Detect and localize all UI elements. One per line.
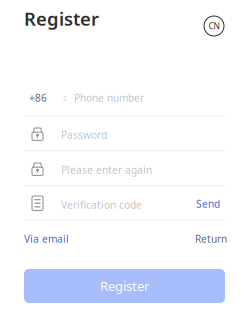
- staticText: +86: [29, 91, 47, 105]
- staticText: Register: [24, 6, 99, 31]
- button[interactable]: Send: [196, 197, 220, 211]
- staticText: Return: [195, 232, 227, 246]
- staticText: Send: [196, 197, 220, 211]
- staticText: Phone number: [74, 91, 144, 105]
- staticText: Register: [100, 277, 149, 295]
- staticText: Password: [61, 128, 107, 142]
- button[interactable]: Via email: [24, 232, 69, 246]
- button[interactable]: Region CN: [204, 16, 224, 36]
- staticText: CN: [208, 20, 219, 32]
- button[interactable]: Return: [195, 232, 227, 246]
- button[interactable]: Register: [24, 269, 225, 303]
- staticText: Via email: [24, 232, 69, 246]
- staticText: Please enter again: [61, 163, 152, 177]
- staticText: Verification code: [61, 198, 142, 212]
